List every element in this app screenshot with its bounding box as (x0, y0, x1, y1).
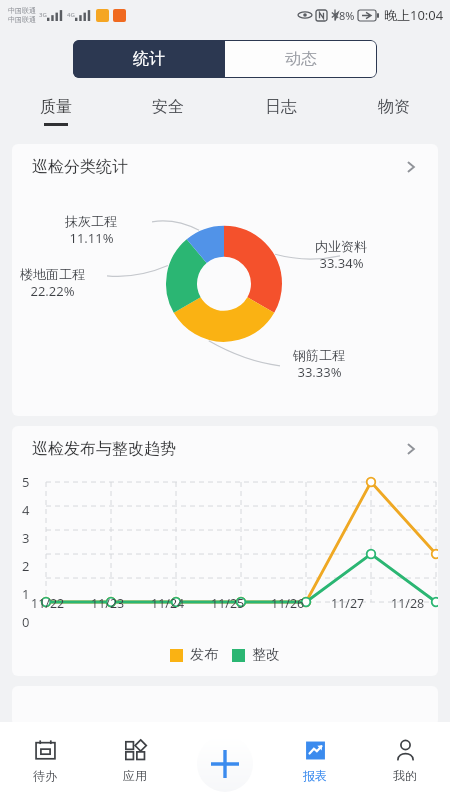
staticText: 质量 (40, 97, 72, 117)
staticText: 11.11% (69, 229, 114, 247)
staticText: 物资 (378, 97, 410, 117)
staticText: 2 (22, 557, 30, 575)
staticText: 4 (22, 501, 30, 519)
staticText: 整改 (252, 646, 280, 664)
staticText: 内业资料 (315, 238, 367, 254)
staticText: 11/24 (151, 595, 185, 612)
button[interactable]: 安全 (112, 88, 224, 134)
staticText: 11/25 (211, 595, 245, 612)
button[interactable]: 统计 (73, 40, 225, 78)
staticText: 3 (22, 529, 30, 547)
staticText: 22.22% (30, 282, 75, 300)
staticText: 晚上10:04 (384, 6, 444, 24)
staticText: 日志 (265, 97, 297, 117)
staticText: 11/28 (391, 595, 425, 612)
staticText: 5 (22, 473, 30, 491)
staticText: 4G (67, 11, 75, 19)
button[interactable]: Add (197, 736, 253, 792)
button[interactable]: 巡检分类统计 (12, 144, 438, 190)
staticText: 动态 (285, 49, 317, 69)
button[interactable]: 巡检发布与整改趋势 (12, 426, 438, 472)
staticText: 报表 (303, 768, 327, 783)
staticText: 巡检发布与整改趋势 (32, 439, 176, 459)
staticText: 中国联通 (8, 15, 36, 24)
staticText: 巡检分类统计 (32, 157, 128, 177)
button[interactable]: 质量 (0, 88, 112, 134)
staticText: 抹灰工程 (65, 213, 117, 229)
button[interactable]: 动态 (225, 40, 377, 78)
staticText: 待办 (33, 768, 57, 783)
staticText: 3G (39, 11, 47, 19)
staticText: 1 (22, 585, 30, 603)
staticText: 11/26 (271, 595, 305, 612)
staticText: 统计 (133, 49, 165, 69)
staticText: 发布 (190, 646, 218, 664)
staticText: 0 (22, 613, 30, 631)
staticText: 11/22 (31, 595, 65, 612)
button[interactable]: 日志 (224, 88, 337, 134)
other: Open details (402, 158, 420, 176)
staticText: 11/27 (331, 595, 365, 612)
staticText: 钢筋工程 (293, 347, 345, 363)
staticText: 中国联通 (8, 6, 36, 15)
button[interactable]: 报表 (270, 722, 360, 800)
button[interactable]: 我的 (360, 722, 450, 800)
other: Open details (402, 440, 420, 458)
button[interactable]: 物资 (337, 88, 450, 134)
staticText: 我的 (393, 768, 417, 783)
button[interactable]: 待办 (0, 722, 90, 800)
button[interactable]: 应用 (90, 722, 180, 800)
staticText: 8% (339, 8, 355, 23)
staticText: 33.34% (319, 254, 364, 272)
staticText: 楼地面工程 (20, 266, 85, 282)
staticText: 安全 (152, 97, 184, 117)
staticText: 33.33% (297, 363, 342, 381)
staticText: 应用 (123, 768, 147, 783)
staticText: 11/23 (91, 595, 125, 612)
